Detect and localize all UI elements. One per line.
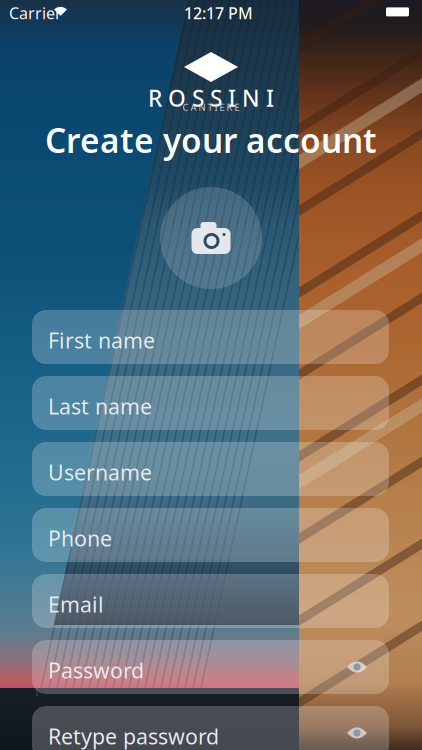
staticText: Password [48, 656, 144, 684]
button[interactable]: First name [32, 310, 389, 364]
button[interactable]: Phone [32, 508, 389, 562]
staticText: Retype password [48, 722, 219, 750]
button[interactable]: Last name [32, 376, 389, 430]
button[interactable]: Username [32, 442, 389, 496]
staticText: First name [48, 326, 155, 354]
staticText: 12:17 PM [184, 2, 253, 24]
button[interactable]: Password [32, 640, 389, 694]
button[interactable]: Retype password [32, 706, 389, 750]
staticText: Email [48, 590, 104, 618]
staticText: C A N T I E R E [182, 101, 239, 113]
staticText: Username [48, 458, 152, 486]
button[interactable]: Email [32, 574, 389, 628]
staticText: Phone [48, 524, 112, 552]
staticText: Create your account [45, 118, 377, 162]
staticText: Carrier [9, 2, 62, 24]
staticText: Last name [48, 392, 152, 420]
staticText: R O S S I N I [148, 83, 274, 113]
button[interactable]: Add profile photo [160, 187, 262, 289]
